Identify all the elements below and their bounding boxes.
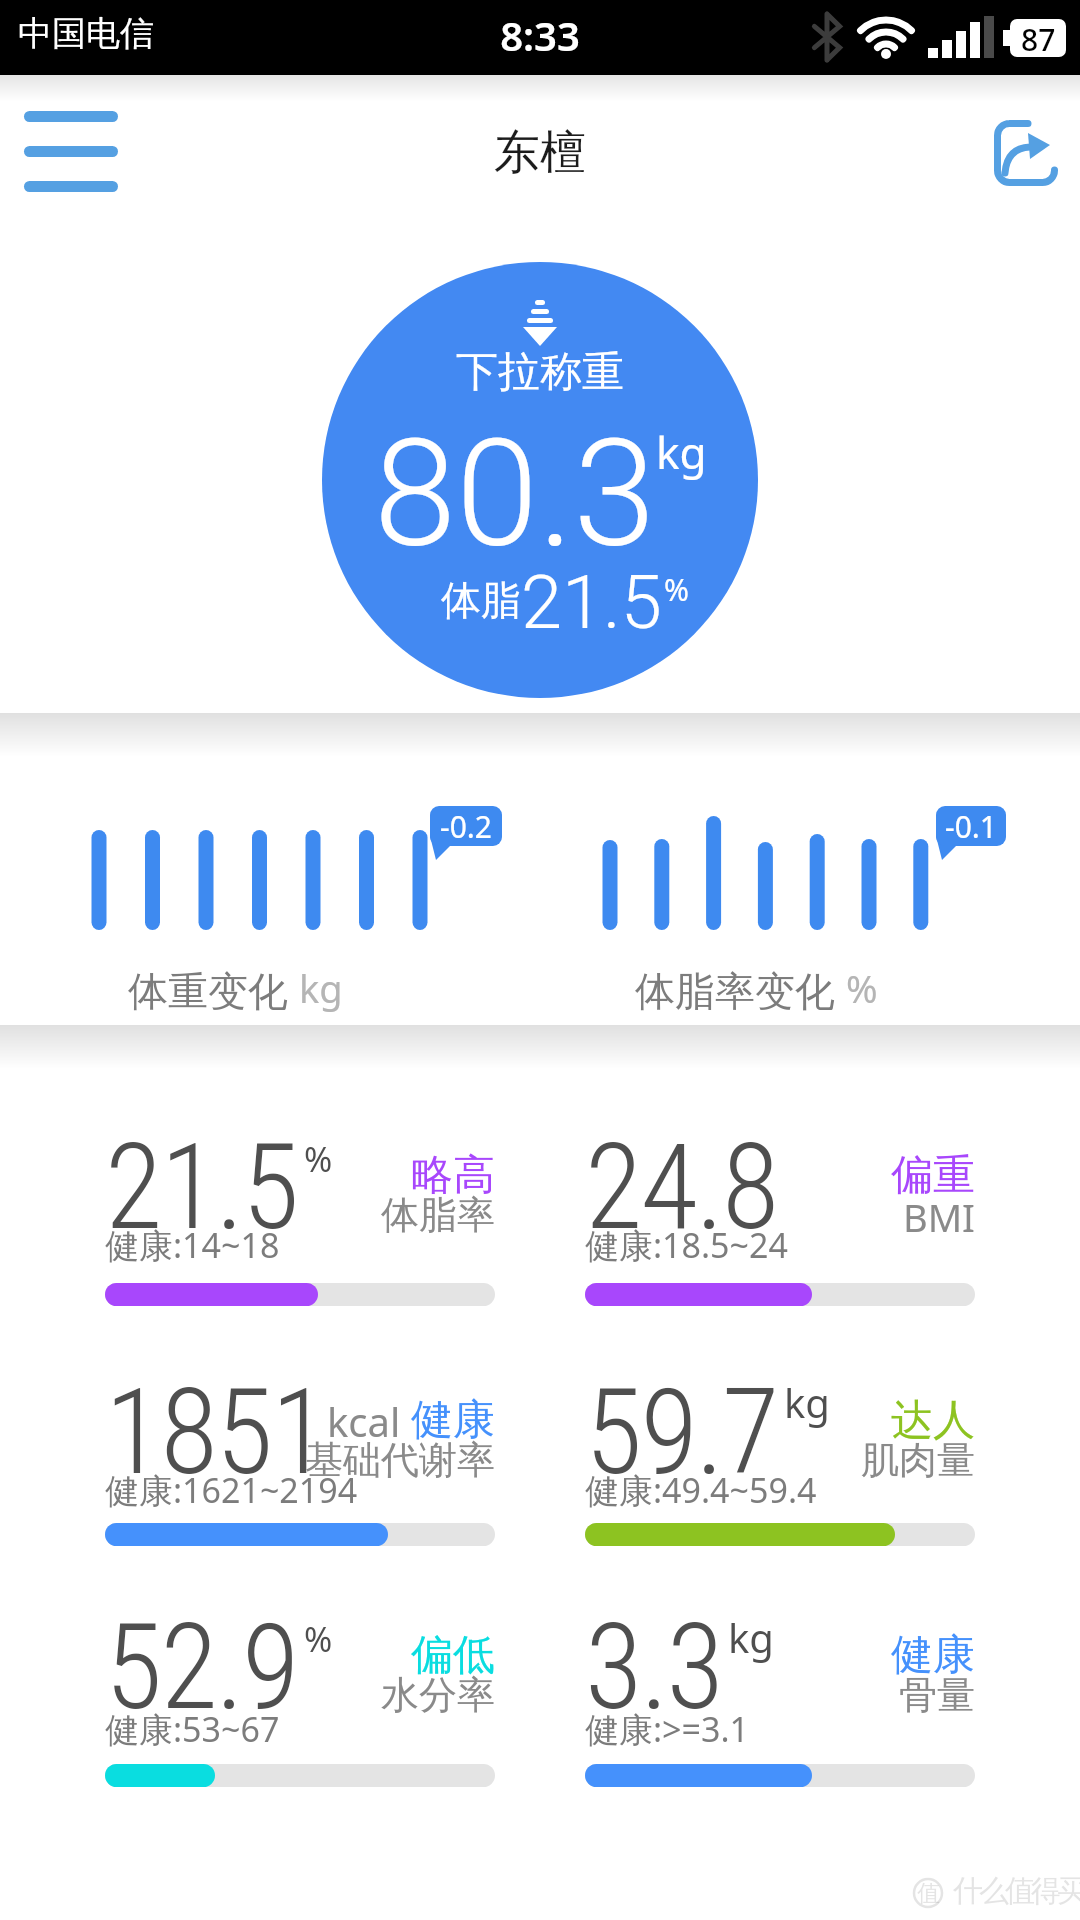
button[interactable] [105,1360,495,1580]
staticText: % [304,1136,333,1182]
staticText: 体脂 [441,575,521,625]
button[interactable] [585,1115,975,1335]
staticText: -0.2 [440,806,493,846]
staticText: 健康:1621~2194 [105,1467,358,1513]
staticText: kg [299,962,343,1014]
staticText: kcal [327,1394,411,1448]
staticText: % [304,1616,333,1662]
staticText: 21.5 [105,1119,298,1257]
staticText: % [664,569,689,610]
staticText: 8:33 [500,8,580,62]
staticText: 基础代谢率 [305,1436,495,1484]
staticText: 健康:>=3.1 [585,1706,750,1752]
staticText: kg [728,1610,774,1664]
staticText: 水分率 [381,1671,495,1719]
staticText: 偏重 [891,1149,975,1202]
staticText: 健康:14~18 [105,1222,280,1268]
staticText: 东檀 [494,124,586,182]
staticText: 59.7 [585,1364,778,1502]
staticText: 值 [917,1879,940,1908]
staticText: 中国电信 [18,12,154,55]
button[interactable] [585,1595,975,1815]
staticText: 略高 [411,1149,495,1202]
staticText: kg [784,1375,830,1429]
staticText: 健康:53~67 [105,1706,280,1752]
staticText: 健康:49.4~59.4 [585,1467,817,1513]
button[interactable] [585,1360,975,1580]
button[interactable]: 下拉称重 [322,262,758,698]
staticText: 21.5 [521,559,662,646]
staticText: 肌肉量 [861,1436,975,1484]
staticText: kg [656,422,707,482]
staticText: 80.3 [374,408,656,581]
staticText: 24.8 [585,1119,778,1257]
staticText: 1851 [105,1364,327,1502]
staticText: 偏低 [411,1629,495,1682]
button[interactable] [994,120,1058,186]
staticText: % [846,962,878,1014]
staticText: 体脂率 [381,1191,495,1239]
staticText: -0.1 [945,806,998,846]
staticText: 87 [1021,19,1056,57]
staticText: BMI [902,1191,975,1243]
button[interactable] [105,1595,495,1815]
staticText: 健康 [411,1394,495,1447]
staticText: 下拉称重 [456,346,624,399]
staticText: 健康 [891,1629,975,1682]
staticText: 骨量 [899,1671,975,1719]
staticText: 体重变化 [128,962,299,1017]
staticText: 什么值得买 [955,1872,1080,1910]
staticText: 健康:18.5~24 [585,1222,788,1268]
staticText: 体脂率变化 [635,962,846,1017]
button[interactable] [24,111,120,195]
staticText: 3.3 [585,1599,722,1737]
staticText: 52.9 [105,1599,298,1737]
staticText: 达人 [891,1394,975,1447]
button[interactable] [105,1115,495,1335]
